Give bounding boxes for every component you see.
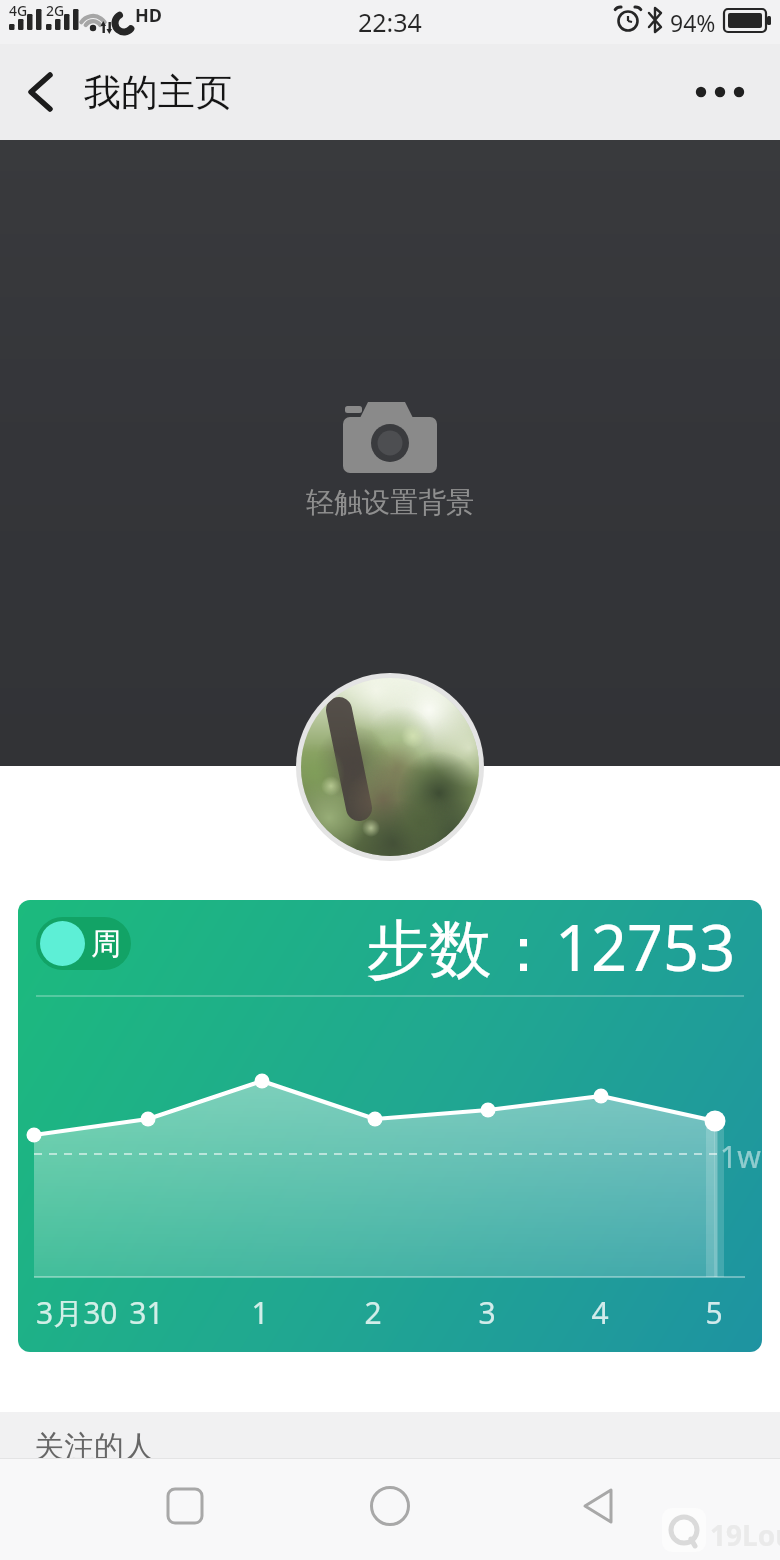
button[interactable] — [684, 64, 756, 120]
staticText: 步数：12753 — [366, 904, 736, 990]
staticText: 94% — [670, 7, 716, 38]
staticText: 4G — [9, 1, 28, 20]
staticText: 3 — [478, 1292, 496, 1333]
staticText: 1 — [251, 1292, 269, 1333]
staticText: 轻触设置背景 — [306, 485, 474, 520]
button[interactable]: 关注的人 — [0, 1412, 780, 1458]
button[interactable] — [296, 673, 484, 861]
staticText: 4 — [591, 1292, 609, 1333]
staticText: 31 — [129, 1292, 164, 1333]
staticText: 关注的人 — [34, 1428, 154, 1466]
button[interactable] — [157, 1478, 213, 1534]
button[interactable]: 轻触设置背景 — [0, 140, 780, 766]
button[interactable]: 周 — [18, 900, 762, 1352]
staticText: 2 — [364, 1292, 382, 1333]
button[interactable] — [362, 1478, 418, 1534]
staticText: 19Lou — [710, 1516, 780, 1554]
staticText: HD — [135, 3, 162, 28]
button[interactable] — [14, 64, 70, 120]
button[interactable]: 19Lou — [658, 1506, 780, 1560]
staticText: 我的主页 — [84, 69, 232, 116]
button[interactable] — [571, 1478, 627, 1534]
staticText: 5 — [705, 1292, 723, 1333]
button[interactable]: 周 — [36, 917, 131, 970]
staticText: 3月30 — [36, 1292, 118, 1333]
staticText: 22:34 — [358, 5, 422, 39]
staticText: 1w — [720, 1136, 761, 1177]
staticText: 周 — [91, 925, 121, 963]
staticText: 2G — [46, 1, 65, 20]
